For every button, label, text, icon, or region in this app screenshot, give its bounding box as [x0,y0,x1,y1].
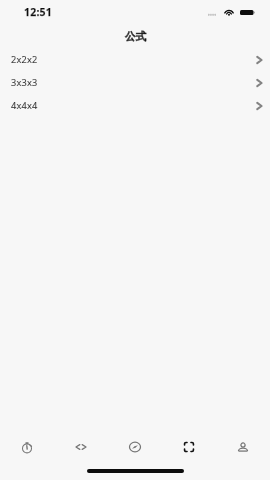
staticText: 公式 [125,30,146,43]
button[interactable]: Explore [108,431,162,463]
button[interactable]: 4x4x4 [0,94,270,117]
button[interactable]: Algorithms [54,431,108,463]
staticText: 12:51 [24,5,52,19]
button[interactable]: 2x2x2 [0,48,270,71]
button[interactable]: Account [216,431,270,463]
staticText: 4x4x4 [11,99,38,112]
button[interactable]: Scan [162,431,216,463]
staticText: 3x3x3 [11,76,38,89]
button[interactable]: Timer [0,431,54,463]
staticText: 公式 [125,30,146,43]
staticText: 12:51 [24,5,52,19]
staticText: 2x2x2 [11,53,38,66]
button[interactable]: 3x3x3 [0,71,270,94]
staticText: 4x4x4 [11,99,38,112]
staticText: 2x2x2 [11,53,38,66]
staticText: 3x3x3 [11,76,38,89]
